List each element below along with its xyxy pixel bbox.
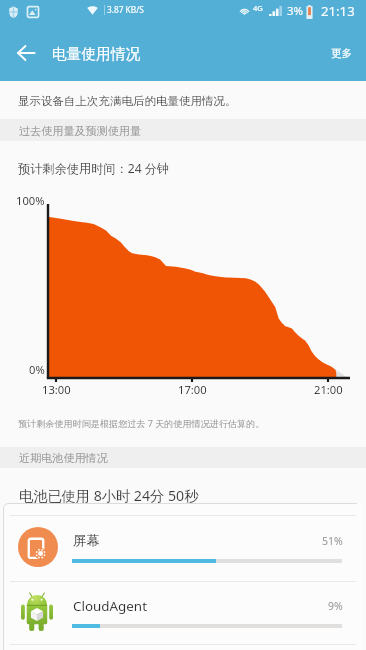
staticText: 17:00 xyxy=(178,382,207,397)
staticText: 100% xyxy=(16,193,45,208)
staticText: 更多 xyxy=(331,47,352,60)
button[interactable]: 更多 xyxy=(322,38,360,68)
staticText: 预计剩余使用时间是根据您过去 7 天的使用情况进行估算的。 xyxy=(18,417,265,429)
button[interactable]: Back xyxy=(6,33,46,73)
button[interactable]: CloudAgent xyxy=(3,580,357,644)
staticText: 电池已使用 8小时 24分 50秒 xyxy=(19,486,199,505)
staticText: 13:00 xyxy=(42,382,71,397)
staticText: 过去使用量及预测使用量 xyxy=(19,124,142,138)
staticText: 近期电池使用情况 xyxy=(19,451,108,465)
staticText: 3% xyxy=(287,3,304,19)
staticText: 预计剩余使用时间：24 分钟 xyxy=(18,160,170,177)
staticText: 4G xyxy=(253,3,263,13)
staticText: 51% xyxy=(322,534,343,548)
staticText: 屏幕 xyxy=(73,532,100,549)
staticText: 21:00 xyxy=(314,382,343,397)
staticText: 0% xyxy=(29,362,45,377)
staticText: CloudAgent xyxy=(73,597,147,615)
staticText: 3.87 KB/S xyxy=(107,4,144,15)
staticText: 电量使用情况 xyxy=(52,45,141,64)
staticText: 显示设备自上次充满电后的电量使用情况。 xyxy=(18,94,237,108)
button[interactable]: 屏幕 xyxy=(3,515,357,579)
staticText: 9% xyxy=(328,599,343,613)
staticText: 21:13 xyxy=(321,2,355,20)
